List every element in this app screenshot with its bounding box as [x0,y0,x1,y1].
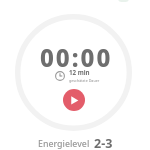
staticText: Energielevel [38,138,90,150]
staticText: 12 min [69,68,90,76]
button[interactable]: 12 min [55,71,100,86]
button[interactable]: Start workout [63,89,85,111]
staticText: geschätzte Dauer [69,78,100,83]
staticText: 2-3 [94,135,113,150]
button[interactable]: Energielevel [0,133,150,150]
staticText: 00:00 [40,41,113,74]
